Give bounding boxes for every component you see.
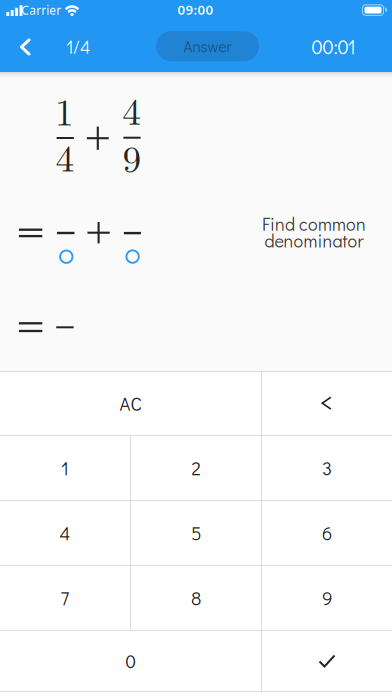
button[interactable]: 8 [131,566,261,630]
staticText: 7 [60,586,69,610]
staticText: 00:01 [311,33,355,59]
button[interactable]: Answer [156,31,259,61]
button[interactable]: 5 [131,501,261,565]
staticText: 4 [59,521,70,545]
button[interactable]: 9 [262,566,392,630]
button[interactable] [262,372,392,435]
staticText: 8 [191,586,201,610]
button[interactable]: 4 [0,501,130,565]
staticText: 9 [322,586,332,610]
button[interactable]: 1 [0,436,130,500]
staticText: denominator [264,229,363,252]
staticText: 1/4 [66,35,90,59]
button[interactable]: AC [0,372,261,435]
staticText: 1 [61,456,69,480]
button[interactable]: 0 [0,631,261,691]
staticText: 0 [125,649,135,673]
staticText: 9 [123,130,142,183]
staticText: Find common [262,212,366,236]
staticText: 5 [191,521,201,545]
button[interactable]: 3 [262,436,392,500]
button[interactable]: 7 [0,566,130,630]
button[interactable]: 2 [131,436,261,500]
staticText: 09:00 [177,1,213,18]
staticText: Answer [183,36,231,56]
staticText: 3 [322,456,332,480]
button[interactable]: 6 [262,501,392,565]
staticText: 4 [122,83,141,136]
staticText: Carrier [21,2,61,18]
button[interactable] [7,30,41,64]
staticText: 2 [191,456,200,480]
staticText: AC [119,391,141,416]
staticText: 6 [322,521,332,545]
staticText: 4 [55,129,74,182]
staticText: 1 [55,83,74,136]
button[interactable] [262,631,392,691]
